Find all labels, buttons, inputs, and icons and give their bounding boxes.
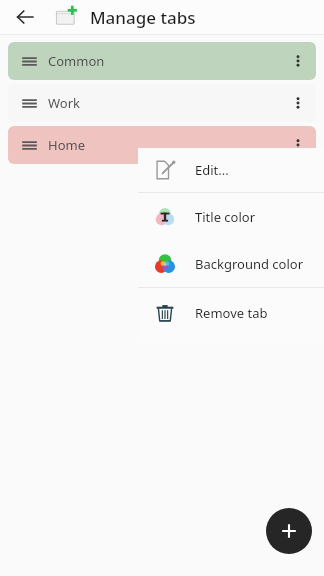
- staticText: Home: [48, 136, 85, 154]
- staticText: Manage tabs: [90, 6, 196, 29]
- button[interactable]: More options for Common: [283, 46, 313, 76]
- button[interactable]: Reorder: [8, 126, 316, 164]
- button[interactable]: Reorder: [8, 84, 316, 122]
- button[interactable]: More options for Home: [283, 130, 313, 160]
- staticText: Background color: [195, 255, 304, 273]
- button[interactable]: Back: [12, 4, 38, 30]
- staticText: Title color: [195, 208, 256, 226]
- staticText: Work: [48, 94, 81, 112]
- button[interactable]: Reorder: [16, 48, 42, 74]
- button[interactable]: Add tab: [266, 508, 312, 554]
- button[interactable]: Reorder: [16, 90, 42, 116]
- button[interactable]: New tab: [52, 2, 82, 32]
- button[interactable]: Reorder: [16, 132, 42, 158]
- button[interactable]: Title color: [138, 193, 324, 240]
- button[interactable]: Remove tab: [138, 288, 324, 337]
- staticText: Edit...: [195, 161, 229, 179]
- button[interactable]: Reorder: [8, 42, 316, 80]
- staticText: Remove tab: [195, 304, 268, 322]
- button[interactable]: Edit...: [138, 148, 324, 192]
- staticText: Common: [48, 52, 105, 70]
- button[interactable]: Background color: [138, 240, 324, 287]
- button[interactable]: More options for Work: [283, 88, 313, 118]
